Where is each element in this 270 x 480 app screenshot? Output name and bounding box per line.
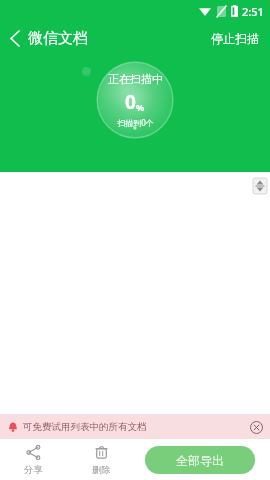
staticText: % (136, 101, 145, 113)
other: Back (10, 31, 19, 46)
button[interactable]: 删除 (67, 439, 135, 480)
staticText: 分享 (24, 464, 43, 475)
button[interactable]: Back (0, 25, 96, 52)
staticText: 正在扫描中 (108, 72, 163, 86)
button[interactable]: 分享 (0, 439, 67, 480)
staticText: 扫描到0个 (117, 117, 154, 128)
button[interactable]: 停止扫描 (200, 25, 270, 52)
staticText: 2:51 (242, 4, 264, 19)
button[interactable]: 可免费试用列表中的所有文档 (0, 414, 270, 439)
staticText: 可免费试用列表中的所有文档 (23, 421, 147, 433)
staticText: 微信文档 (28, 29, 88, 48)
staticText: 停止扫描 (211, 31, 259, 46)
staticText: 删除 (92, 464, 111, 475)
button[interactable]: Scroll (253, 178, 267, 194)
button[interactable]: Close (248, 419, 264, 435)
button[interactable]: 全部导出 (145, 446, 255, 474)
staticText: 0 (125, 89, 136, 115)
staticText: 全部导出 (176, 453, 224, 468)
